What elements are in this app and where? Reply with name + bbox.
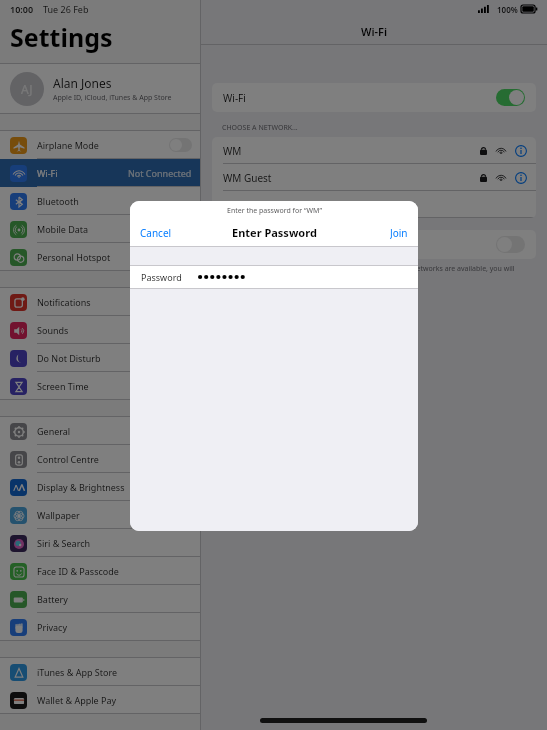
- staticText: Control Centre: [37, 453, 99, 465]
- button[interactable]: WM Guest: [212, 164, 536, 191]
- staticText: 100%: [497, 4, 518, 15]
- staticText: Known networks will be joined automatica…: [222, 264, 526, 284]
- button[interactable]: Privacy: [0, 613, 200, 641]
- button[interactable]: Battery: [0, 585, 200, 613]
- button[interactable]: Bluetooth: [0, 187, 200, 215]
- button[interactable]: Cancel: [130, 223, 182, 242]
- staticText: Password: [141, 271, 182, 283]
- staticText: Wallet & Apple Pay: [37, 694, 117, 706]
- button[interactable]: Display & Brightness: [0, 473, 200, 501]
- staticText: Join: [390, 226, 408, 239]
- staticText: General: [37, 425, 71, 437]
- other: Wi-Fi on: [496, 89, 525, 106]
- button[interactable]: Siri & Search: [0, 529, 200, 557]
- other: Ask to Join Networks toggle: [496, 236, 525, 253]
- other: More info: [515, 172, 527, 184]
- staticText: Bluetooth: [37, 195, 79, 207]
- button[interactable]: Other: [212, 191, 536, 218]
- staticText: Wi-Fi: [223, 91, 246, 105]
- button[interactable]: Airplane Mode toggle: [169, 138, 192, 152]
- staticText: CHOOSE A NETWORK...: [222, 123, 298, 133]
- button[interactable]: Mobile Data: [0, 215, 200, 243]
- staticText: Do Not Disturb: [37, 352, 101, 364]
- button[interactable]: Airplane Mode: [0, 131, 200, 159]
- staticText: Screen Time: [37, 380, 89, 392]
- staticText: Notifications: [37, 296, 91, 308]
- button[interactable]: Password: [130, 266, 418, 288]
- staticText: Not Connected: [128, 167, 192, 179]
- staticText: Enter Password: [232, 225, 317, 240]
- button[interactable]: WM: [212, 137, 536, 164]
- staticText: Airplane Mode: [37, 139, 99, 151]
- staticText: AJ: [21, 81, 33, 97]
- staticText: Other: [223, 198, 251, 212]
- staticText: Battery: [37, 593, 68, 605]
- staticText: Cancel: [140, 226, 172, 239]
- staticText: Personal Hotspot: [37, 251, 111, 263]
- staticText: Apple ID, iCloud, iTunes & App Store: [53, 93, 172, 103]
- staticText: Alan Jones: [53, 75, 112, 91]
- button[interactable]: Personal Hotspot: [0, 243, 200, 271]
- staticText: Wi-Fi: [361, 24, 388, 39]
- button[interactable]: Screen Time: [0, 372, 200, 400]
- staticText: Enter the password for “WM”: [227, 206, 322, 216]
- button[interactable]: Notifications: [0, 288, 200, 316]
- staticText: Siri & Search: [37, 537, 91, 549]
- button[interactable]: Wi-Fi: [0, 159, 200, 187]
- staticText: Tue 26 Feb: [43, 3, 89, 15]
- button[interactable]: Control Centre: [0, 445, 200, 473]
- staticText: Mobile Data: [37, 223, 89, 235]
- button[interactable]: AJ: [0, 64, 200, 113]
- button[interactable]: Wallet & Apple Pay: [0, 686, 200, 714]
- staticText: Sounds: [37, 324, 69, 336]
- staticText: Display & Brightness: [37, 481, 125, 493]
- staticText: iTunes & App Store: [37, 666, 118, 678]
- staticText: Face ID & Passcode: [37, 565, 119, 577]
- other: More info: [515, 145, 527, 157]
- staticText: WM: [223, 144, 242, 158]
- staticText: Ask to Join Networks: [223, 238, 320, 252]
- button[interactable]: iTunes & App Store: [0, 658, 200, 686]
- button[interactable]: Do Not Disturb: [0, 344, 200, 372]
- staticText: 10:00: [10, 3, 34, 15]
- staticText: WM Guest: [223, 171, 272, 185]
- button[interactable]: Wallpaper: [0, 501, 200, 529]
- button[interactable]: Wi-Fi: [212, 83, 536, 112]
- button[interactable]: Ask to Join Networks: [212, 230, 536, 259]
- button[interactable]: Join: [380, 223, 418, 242]
- button[interactable]: Face ID & Passcode: [0, 557, 200, 585]
- staticText: Settings: [10, 20, 113, 54]
- button[interactable]: Sounds: [0, 316, 200, 344]
- staticText: Wallpaper: [37, 509, 80, 521]
- staticText: Wi-Fi: [37, 167, 58, 179]
- staticText: Privacy: [37, 621, 68, 633]
- button[interactable]: General: [0, 417, 200, 445]
